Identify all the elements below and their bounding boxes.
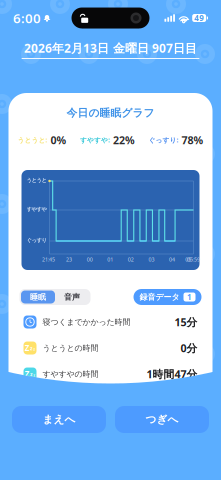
staticText: 23 (66, 256, 72, 263)
staticText: 1時間47分 (146, 367, 197, 381)
staticText: Z (25, 369, 30, 379)
staticText: 03 (148, 256, 154, 263)
staticText: 今日の睡眠グラフ (66, 106, 154, 119)
staticText: Z (25, 343, 30, 353)
staticText: 0分 (180, 341, 197, 355)
staticText: 寝つくまでかかった時間 (42, 317, 130, 327)
staticText: すやすや (26, 206, 46, 213)
button[interactable]: Z (8, 361, 212, 387)
staticText: 22% (113, 133, 135, 147)
button[interactable]: つぎへ (115, 406, 209, 433)
button[interactable]: 録音データ (133, 289, 201, 305)
staticText: 00 (87, 256, 93, 263)
staticText: 録音データ (139, 292, 179, 302)
staticText: 49 (194, 13, 204, 23)
staticText: すやすや: (80, 136, 110, 144)
button[interactable]: 睡眠 (21, 290, 55, 303)
staticText: 6:00 (13, 9, 41, 27)
staticText: 02 (128, 256, 134, 263)
staticText: 78% (181, 133, 203, 147)
staticText: 05 (185, 256, 191, 263)
staticText: うとうと: (17, 136, 47, 144)
staticText: z (33, 372, 35, 377)
staticText: 睡眠 (30, 292, 46, 302)
button[interactable]: 音声 (55, 290, 89, 303)
staticText: 01 (107, 256, 113, 263)
button[interactable]: まえへ (12, 406, 106, 433)
staticText: 1 (187, 292, 192, 302)
button[interactable]: Z (8, 335, 212, 361)
staticText: 15分 (174, 315, 197, 329)
staticText: つぎへ (145, 413, 178, 426)
staticText: z (33, 346, 35, 351)
staticText: z (30, 371, 33, 378)
staticText: z (30, 345, 33, 352)
button[interactable]: 寝つくまでかかった時間 (8, 309, 212, 335)
staticText: 2026年2月13日 金曜日 907日目 (24, 40, 197, 56)
staticText: 21:45 (42, 256, 55, 263)
staticText: ぐっすり: (148, 136, 178, 144)
staticText: 05:59 (187, 256, 200, 263)
staticText: 音声 (64, 292, 80, 302)
staticText: まえへ (42, 413, 75, 426)
staticText: 04 (169, 256, 175, 263)
staticText: ぐっすり (26, 237, 46, 244)
staticText: うとうとの時間 (42, 343, 98, 353)
staticText: うとうと (26, 177, 46, 184)
staticText: 0% (50, 133, 66, 147)
staticText: すやすやの時間 (42, 369, 98, 379)
